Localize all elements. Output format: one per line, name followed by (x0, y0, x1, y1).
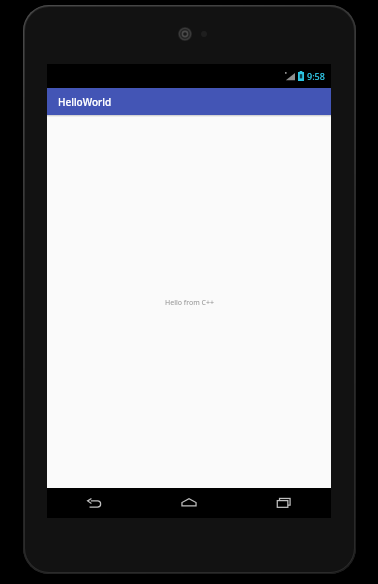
button[interactable]: Recent apps (236, 488, 331, 518)
staticText: Hello from C++ (165, 298, 214, 308)
button[interactable]: Home (141, 488, 236, 518)
staticText: 9:58 (307, 70, 325, 82)
button[interactable]: HelloWorld (47, 88, 331, 115)
button[interactable]: Back (47, 488, 141, 518)
staticText: HelloWorld (58, 95, 112, 109)
